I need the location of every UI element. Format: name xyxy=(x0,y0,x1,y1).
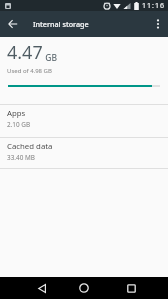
staticText: Apps xyxy=(7,108,26,119)
button[interactable] xyxy=(31,277,53,299)
staticText: Internal storage xyxy=(33,19,89,29)
staticText: GB xyxy=(43,52,57,64)
button[interactable] xyxy=(0,11,26,37)
button[interactable] xyxy=(120,277,142,299)
staticText: 4.47 xyxy=(7,40,43,65)
button[interactable] xyxy=(73,277,95,299)
staticText: 2.10 GB xyxy=(7,120,31,129)
staticText: Used of 4.98 GB xyxy=(7,67,52,75)
staticText: Cached data xyxy=(7,141,53,152)
staticText: 11:16 xyxy=(142,1,165,11)
button[interactable]: Apps xyxy=(0,105,168,137)
button[interactable]: Cached data xyxy=(0,138,168,168)
button[interactable] xyxy=(148,14,168,34)
staticText: 33.40 MB xyxy=(7,153,35,162)
